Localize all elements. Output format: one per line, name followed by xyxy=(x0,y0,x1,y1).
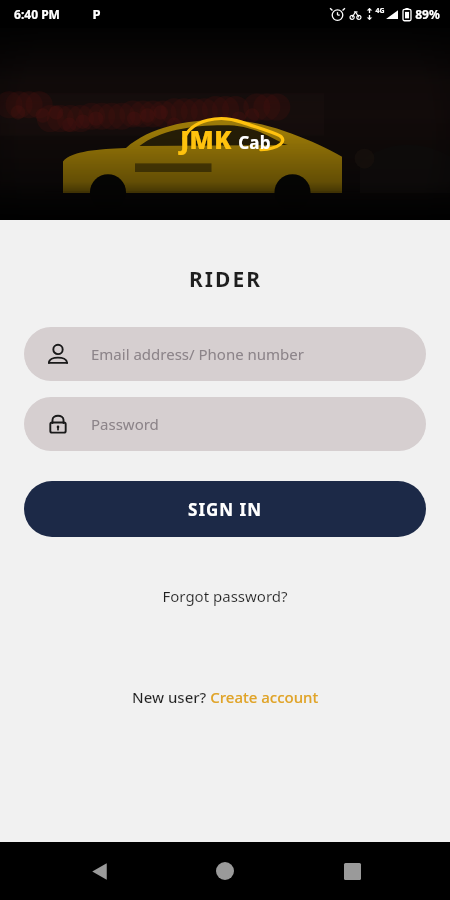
staticText: 6:40 PM xyxy=(14,6,60,22)
button[interactable]: Password xyxy=(24,397,426,451)
button[interactable]: Home xyxy=(197,843,253,899)
staticText: Forgot password? xyxy=(162,586,288,606)
button[interactable]: SIGN IN xyxy=(24,481,426,537)
staticText: New user? Create account xyxy=(132,687,319,707)
button[interactable]: Email address/ Phone number xyxy=(24,327,426,381)
staticText: JMK xyxy=(180,122,232,156)
button[interactable]: New user? Create account xyxy=(120,681,331,713)
staticText: 4G xyxy=(375,6,385,16)
staticText: RIDER xyxy=(189,265,262,294)
button[interactable]: Forgot password? xyxy=(150,580,300,612)
staticText: 89% xyxy=(415,6,440,22)
staticText: P xyxy=(92,5,101,23)
staticText: Email address/ Phone number xyxy=(91,344,304,364)
staticText: Cab xyxy=(238,131,271,154)
staticText: SIGN IN xyxy=(188,498,262,521)
button[interactable]: Back xyxy=(71,843,127,899)
button[interactable]: Recent apps xyxy=(324,843,380,899)
staticText: Password xyxy=(91,414,159,434)
